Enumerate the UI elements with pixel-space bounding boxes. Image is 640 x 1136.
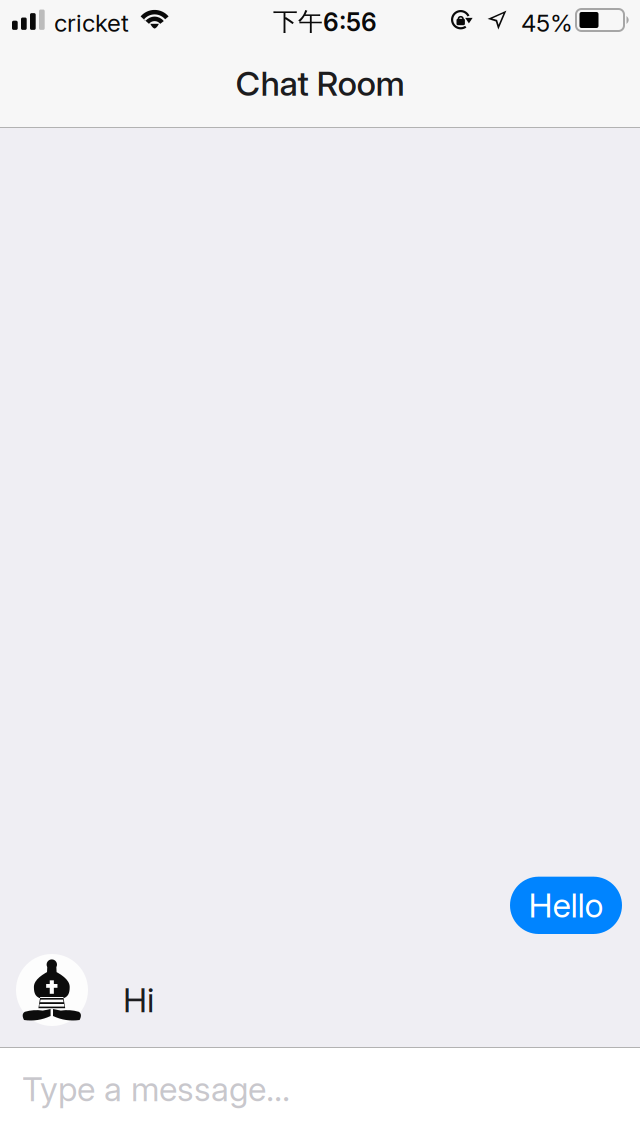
staticText: cricket bbox=[54, 8, 129, 37]
staticText: 下午6:56 bbox=[273, 6, 377, 37]
button[interactable]: Hi bbox=[88, 954, 154, 1020]
staticText: Hello bbox=[528, 885, 603, 925]
button[interactable]: Type a message... bbox=[0, 1047, 640, 1136]
staticText: 45% bbox=[521, 8, 573, 37]
button[interactable]: Hello bbox=[510, 877, 622, 934]
staticText: Hi bbox=[123, 980, 154, 1020]
button[interactable]: Sender profile photo bbox=[0, 954, 88, 1028]
staticText: Type a message... bbox=[22, 1069, 290, 1109]
staticText: Chat Room bbox=[235, 63, 404, 104]
